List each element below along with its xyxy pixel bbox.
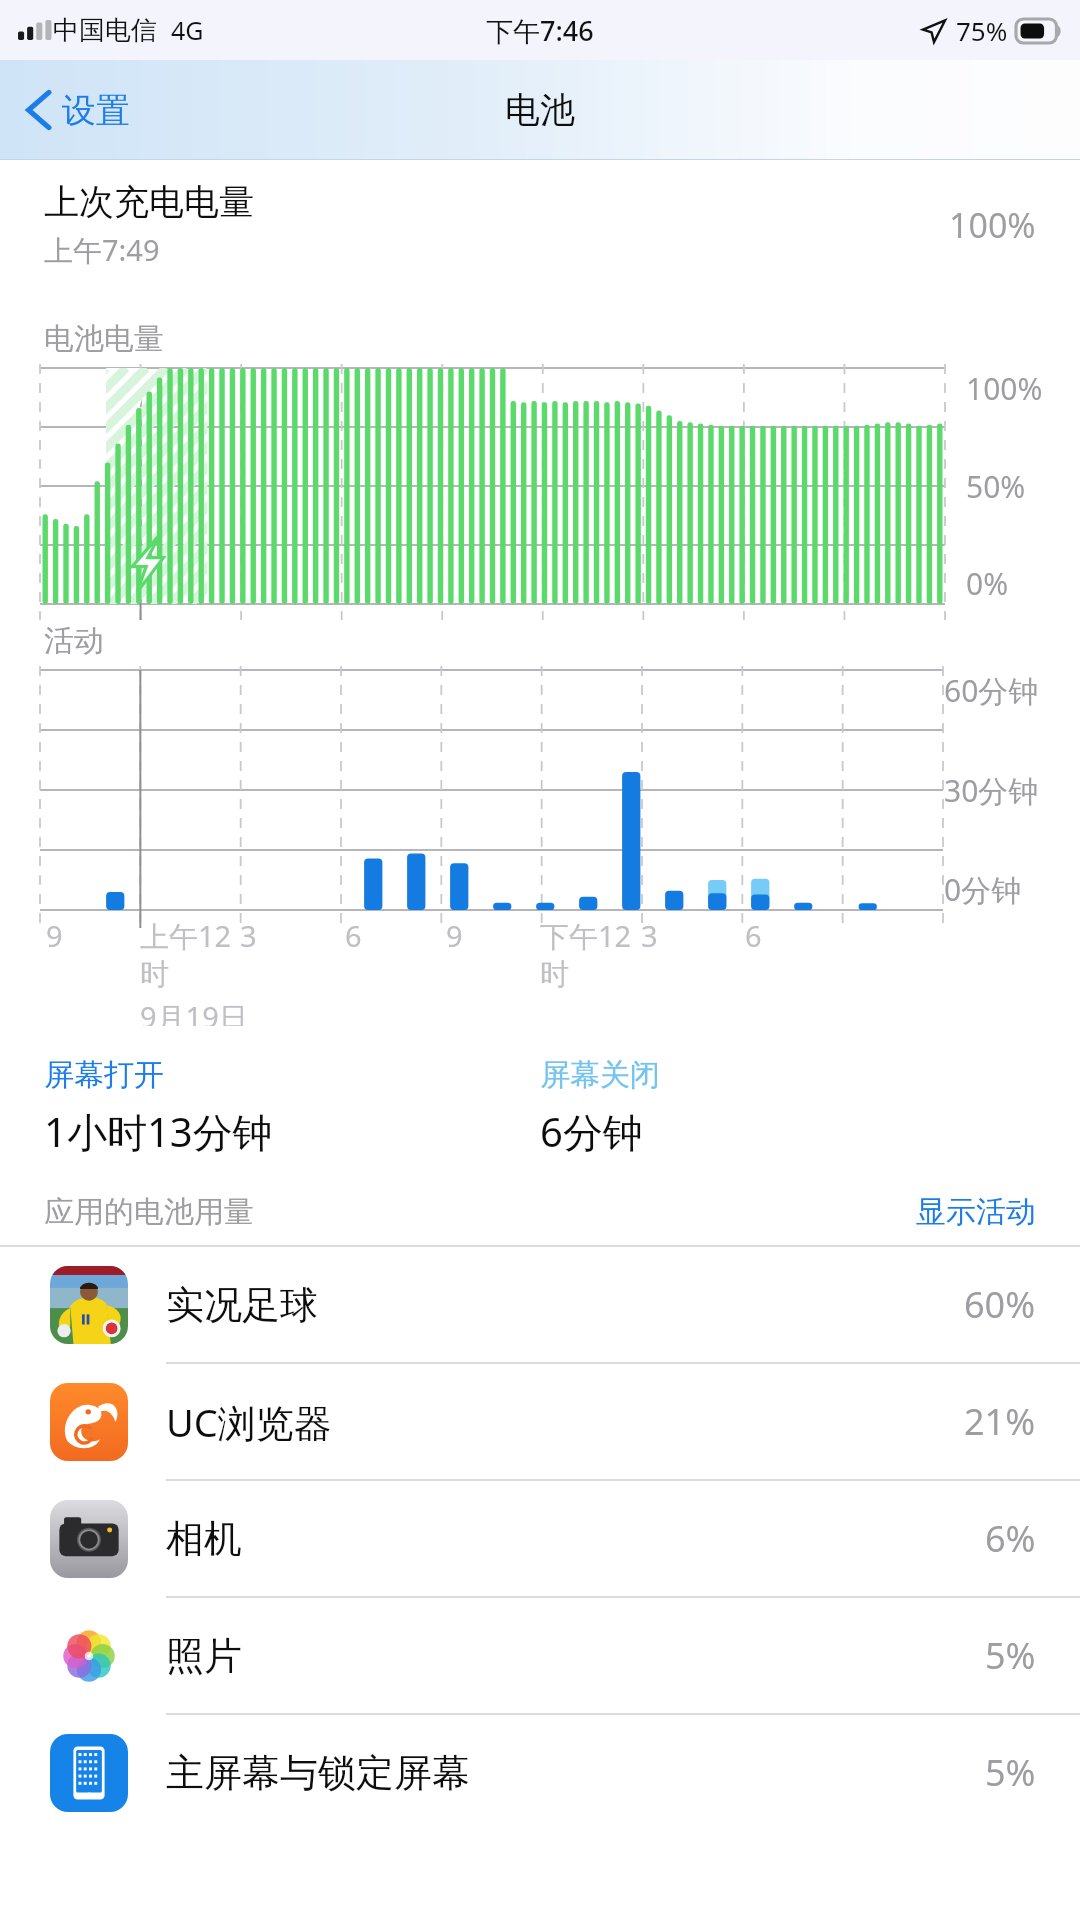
staticText: 5% [985, 1631, 1036, 1680]
staticText: 电池 [505, 88, 575, 132]
staticText: 6% [985, 1514, 1036, 1563]
staticText: 屏幕打开 [44, 1056, 164, 1094]
staticText: 21% [964, 1397, 1036, 1446]
button[interactable]: 主屏幕与锁定屏幕 [0, 1715, 1080, 1830]
staticText: 活动 [44, 622, 104, 660]
staticText: 显示活动 [916, 1193, 1036, 1231]
button[interactable]: 上次充电电量 [0, 174, 1080, 276]
staticText: 3 [641, 916, 658, 955]
staticText: 下午7:46 [486, 12, 594, 49]
staticText: UC浏览器 [166, 1396, 964, 1448]
staticText: 9月19日 [140, 997, 248, 1026]
button[interactable]: 照片 [0, 1598, 1080, 1715]
button[interactable]: 相机 [0, 1481, 1080, 1598]
staticText: 时 [140, 956, 169, 993]
button[interactable]: 屏幕打开 [44, 1056, 540, 1159]
staticText: 30分钟 [944, 770, 1039, 811]
staticText: 9 [446, 916, 463, 955]
button[interactable]: 设置 [0, 80, 146, 140]
staticText: 上午12 [140, 916, 232, 956]
button[interactable]: 显示活动 [916, 1193, 1036, 1231]
button[interactable]: UC浏览器 [0, 1364, 1080, 1481]
staticText: 50% [966, 466, 1026, 507]
staticText: 上午7:49 [44, 230, 160, 270]
staticText: 60分钟 [944, 670, 1039, 711]
staticText: 6 [345, 916, 362, 955]
staticText: 100% [966, 368, 1043, 409]
staticText: 主屏幕与锁定屏幕 [166, 1749, 985, 1797]
staticText: 电池电量 [44, 320, 164, 358]
staticText: 9 [46, 916, 63, 955]
staticText: 上次充电电量 [44, 180, 254, 224]
staticText: 3 [240, 916, 257, 955]
button[interactable]: 屏幕关闭 [540, 1056, 1036, 1159]
staticText: 0% [966, 563, 1009, 604]
staticText: 1小时13分钟 [44, 1104, 273, 1159]
staticText: 实况足球 [166, 1281, 964, 1329]
button[interactable]: 实况足球 [0, 1247, 1080, 1364]
staticText: 下午12 [540, 916, 632, 956]
staticText: 4G [171, 13, 204, 47]
staticText: 中国电信 [53, 14, 157, 47]
staticText: 设置 [62, 89, 130, 132]
staticText: 100% [949, 202, 1036, 248]
staticText: 75% [956, 13, 1008, 48]
staticText: 时 [540, 956, 569, 993]
staticText: 6分钟 [540, 1104, 643, 1159]
staticText: 屏幕关闭 [540, 1056, 660, 1094]
staticText: 0分钟 [944, 869, 1022, 910]
staticText: 6 [745, 916, 762, 955]
staticText: 5% [985, 1748, 1036, 1797]
staticText: 照片 [166, 1632, 985, 1680]
staticText: 60% [964, 1280, 1036, 1329]
staticText: 相机 [166, 1515, 985, 1563]
staticText: 应用的电池用量 [44, 1193, 916, 1231]
